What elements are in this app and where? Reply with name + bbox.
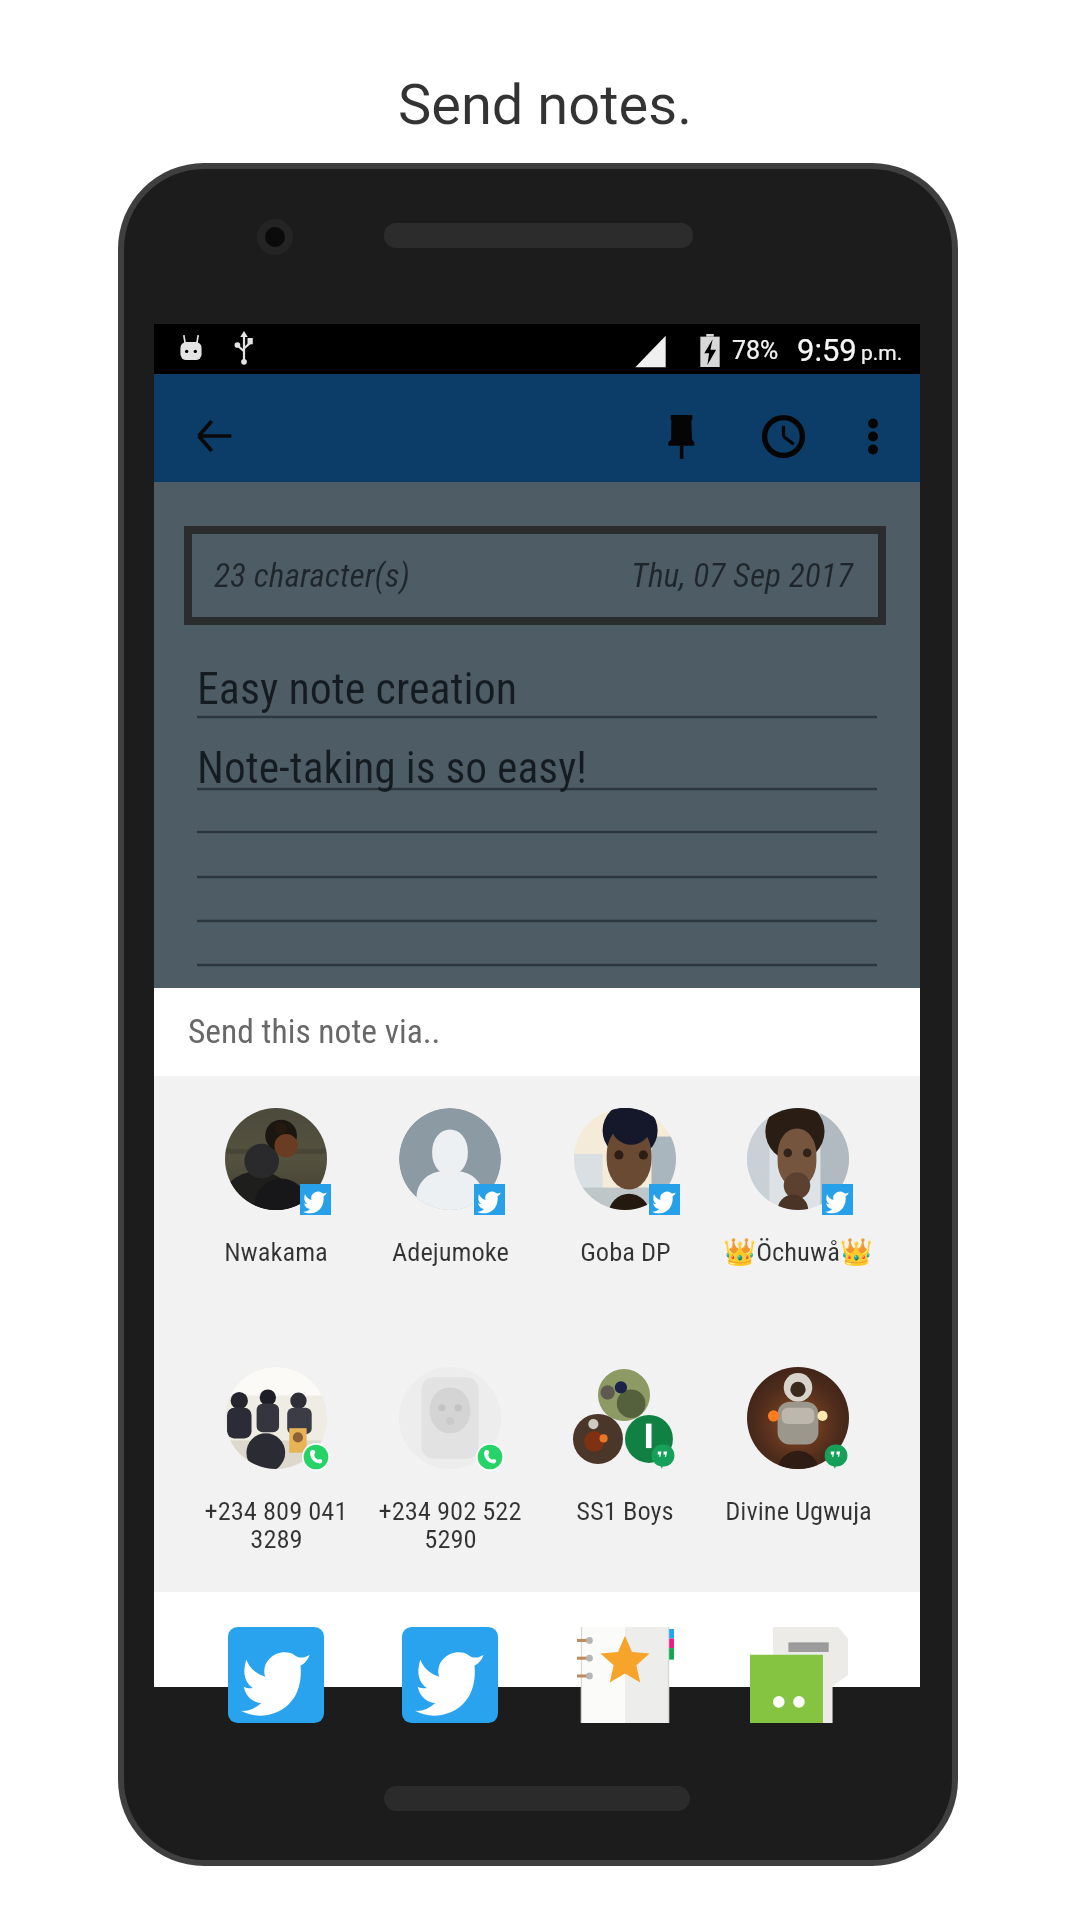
staticText: +234 902 522 — [378, 1495, 522, 1526]
staticText: 78% — [732, 336, 779, 365]
staticText: +234 809 041 — [204, 1495, 348, 1526]
staticText: p.m. — [861, 341, 903, 366]
button[interactable]: Share target — [577, 1627, 673, 1722]
button[interactable]: More options — [839, 402, 907, 470]
staticText: Note-taking is so easy! — [197, 743, 587, 794]
button[interactable]: Set reminder — [746, 399, 820, 473]
button[interactable]: Share target — [402, 1627, 498, 1722]
staticText: SS1 Boys — [576, 1495, 674, 1526]
staticText: Adejumoke — [392, 1236, 509, 1267]
staticText: Thu, 07 Sep 2017 — [631, 556, 853, 595]
staticText: 👑Öchuwå👑 — [723, 1236, 873, 1267]
button[interactable]: Goba DP — [574, 1108, 676, 1210]
staticText: Send this note via.. — [188, 1012, 441, 1051]
button[interactable]: Nwakama — [225, 1108, 327, 1210]
button[interactable]: Share target — [228, 1627, 324, 1722]
button[interactable]: 👑Öchuwå👑 — [747, 1108, 849, 1210]
staticText: 3289 — [250, 1523, 303, 1554]
button[interactable]: Navigate up — [177, 399, 251, 473]
button[interactable]: Divine Ugwuja — [747, 1367, 849, 1469]
button[interactable]: Share target — [750, 1627, 846, 1722]
staticText: Divine Ugwuja — [725, 1495, 872, 1526]
staticText: Goba DP — [580, 1236, 671, 1267]
staticText: Nwakama — [224, 1236, 328, 1267]
button[interactable]: +234 809 041 — [225, 1367, 327, 1469]
staticText: Easy note creation — [197, 663, 518, 715]
staticText: Send notes. — [398, 72, 692, 138]
staticText: 9:59 — [797, 332, 857, 368]
staticText: 23 character(s) — [214, 556, 410, 595]
button[interactable]: SS1 Boys — [574, 1367, 676, 1469]
button[interactable]: Adejumoke — [399, 1108, 501, 1210]
button[interactable]: Pin note — [645, 401, 717, 473]
staticText: 5290 — [424, 1523, 477, 1554]
button[interactable]: +234 902 522 — [399, 1367, 501, 1469]
